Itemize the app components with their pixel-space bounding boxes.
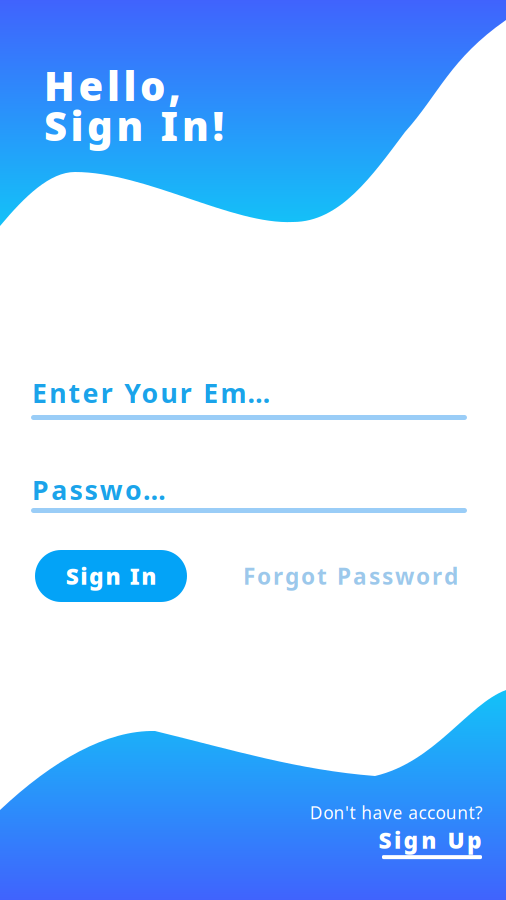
staticText: Hello, (44, 59, 180, 112)
button[interactable]: Forgot Password (243, 561, 458, 591)
staticText: Sign In (66, 561, 156, 591)
staticText: Don't have account? (310, 801, 483, 824)
staticText: Forgot Password (243, 561, 458, 591)
staticText: Sign In! (44, 99, 224, 152)
button[interactable]: Sign Up (378, 825, 482, 859)
staticText: Password (32, 472, 174, 507)
staticText: Enter Your Email (32, 375, 285, 410)
staticText: Sign Up (378, 825, 482, 855)
button[interactable]: Sign In (35, 550, 187, 602)
